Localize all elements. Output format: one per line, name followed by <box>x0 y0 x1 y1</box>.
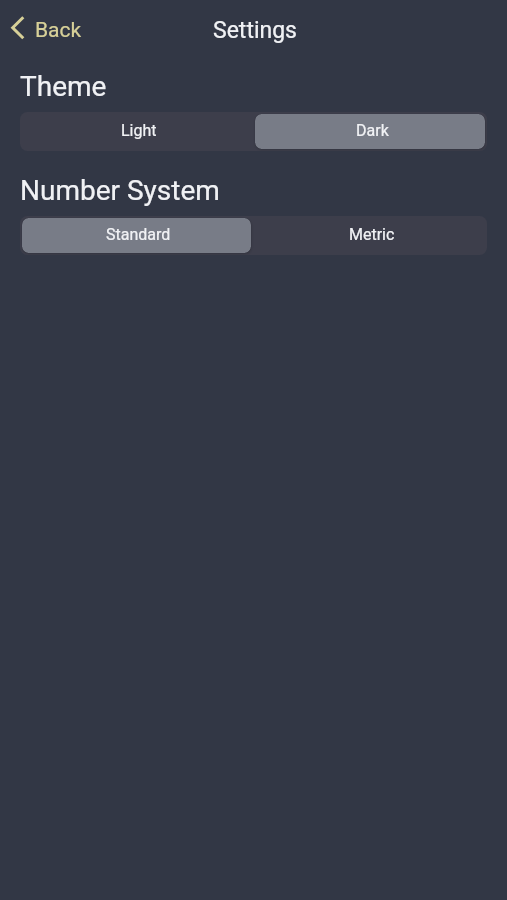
staticText: Theme <box>20 70 107 103</box>
other: Back <box>11 16 25 41</box>
button[interactable]: Standard <box>22 218 253 253</box>
button[interactable]: Light <box>22 114 253 149</box>
button[interactable]: Back <box>8 14 85 43</box>
staticText: Back <box>35 18 82 43</box>
staticText: Settings <box>213 17 297 44</box>
staticText: Number System <box>20 174 220 207</box>
staticText: Light <box>121 121 157 140</box>
button[interactable]: Metric <box>253 218 485 253</box>
staticText: Dark <box>356 121 389 140</box>
staticText: Metric <box>349 225 395 244</box>
staticText: Standard <box>106 225 171 244</box>
button[interactable]: Dark <box>253 114 485 149</box>
